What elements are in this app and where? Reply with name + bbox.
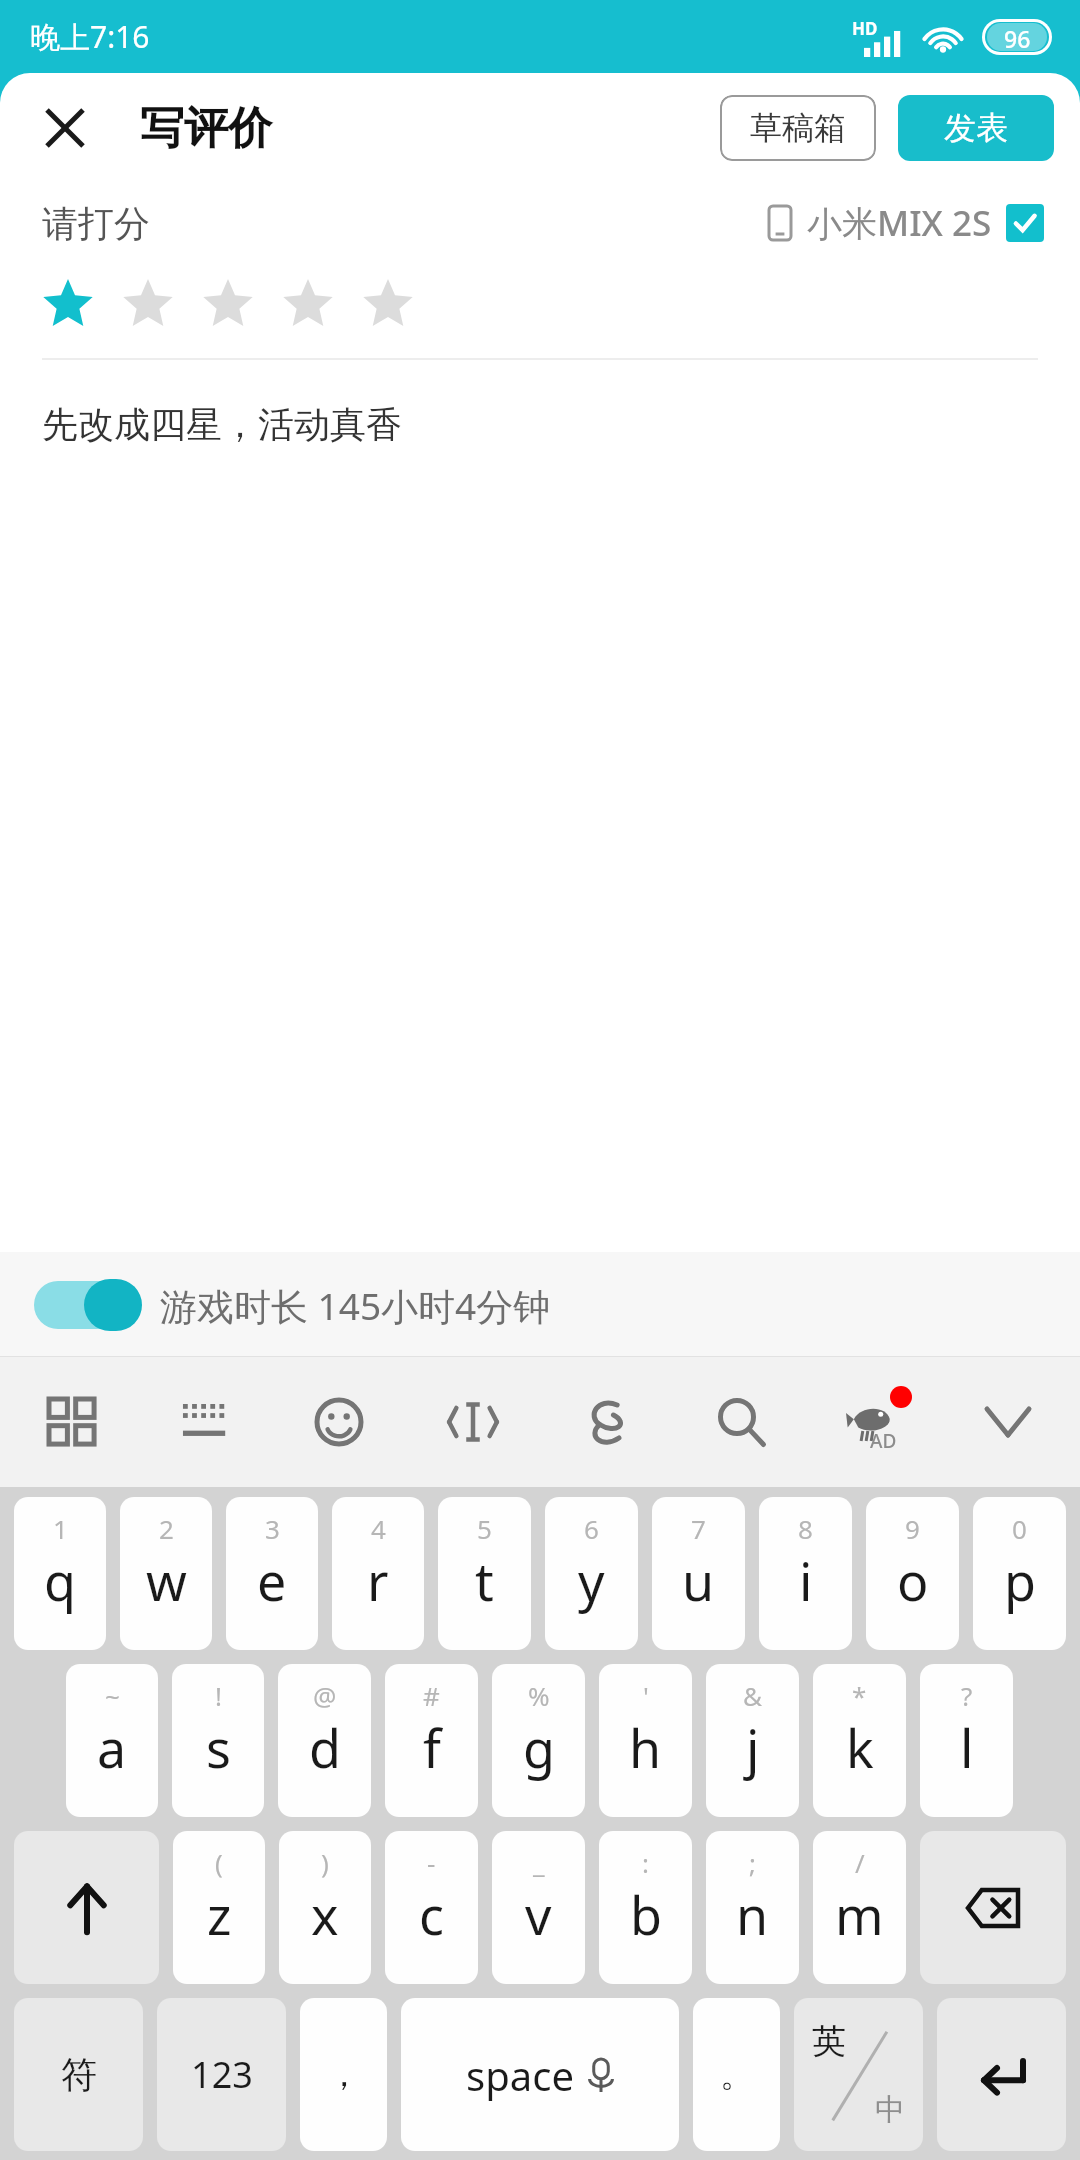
staticText: 草稿箱: [750, 108, 846, 148]
button[interactable]: Switch language: [794, 1998, 923, 2151]
staticText: r: [367, 1545, 389, 1616]
staticText: ?: [961, 1678, 973, 1713]
staticText: 7: [691, 1511, 706, 1546]
button[interactable]: (: [173, 1831, 265, 1984]
staticText: (: [215, 1845, 223, 1880]
button[interactable]: 9: [866, 1497, 959, 1650]
button[interactable]: 4: [332, 1497, 424, 1650]
button[interactable]: 6: [545, 1497, 638, 1650]
button[interactable]: ): [279, 1831, 371, 1984]
button[interactable]: [282, 275, 362, 335]
button[interactable]: Apps: [24, 1367, 120, 1477]
staticText: 晚上7:16: [30, 16, 150, 57]
staticText: i: [799, 1545, 813, 1616]
staticText: t: [475, 1545, 494, 1616]
button[interactable]: Keyboard: [158, 1367, 254, 1477]
staticText: d: [309, 1712, 341, 1783]
button[interactable]: [362, 275, 442, 335]
button[interactable]: @: [278, 1664, 371, 1817]
button[interactable]: 0: [973, 1497, 1066, 1650]
staticText: -: [427, 1845, 436, 1880]
button[interactable]: space: [401, 1998, 679, 2151]
staticText: q: [44, 1545, 76, 1616]
button[interactable]: /: [813, 1831, 906, 1984]
button[interactable]: Backspace: [920, 1831, 1066, 1984]
button[interactable]: 123: [157, 1998, 286, 2151]
button[interactable]: #: [385, 1664, 478, 1817]
staticText: x: [311, 1879, 339, 1950]
button[interactable]: 8: [759, 1497, 852, 1650]
staticText: 请打分: [42, 201, 150, 246]
button[interactable]: Enter: [937, 1998, 1066, 2151]
staticText: 。: [720, 2053, 754, 2096]
button[interactable]: 3: [226, 1497, 318, 1650]
button[interactable]: Hide keyboard: [960, 1367, 1056, 1477]
button[interactable]: Emoji: [291, 1367, 387, 1477]
staticText: o: [897, 1545, 929, 1616]
button[interactable]: :: [599, 1831, 692, 1984]
staticText: 5: [477, 1511, 492, 1546]
staticText: c: [419, 1879, 444, 1950]
staticText: b: [630, 1879, 662, 1950]
button[interactable]: %: [492, 1664, 585, 1817]
staticText: 8: [798, 1511, 813, 1546]
staticText: %: [528, 1678, 550, 1713]
staticText: 123: [191, 2050, 253, 2099]
button[interactable]: ': [599, 1664, 692, 1817]
staticText: j: [746, 1712, 760, 1783]
button[interactable]: 游戏时长 145小时4分钟: [34, 1279, 551, 1331]
staticText: 4: [371, 1511, 386, 1546]
staticText: 9: [905, 1511, 920, 1546]
staticText: ，: [327, 2053, 361, 2096]
staticText: AD: [870, 1428, 897, 1454]
button[interactable]: Attach: [559, 1367, 655, 1477]
button[interactable]: Close: [30, 93, 100, 163]
button[interactable]: 1: [14, 1497, 106, 1650]
staticText: 2: [159, 1511, 174, 1546]
button[interactable]: _: [492, 1831, 585, 1984]
staticText: 英: [812, 2020, 846, 2063]
button[interactable]: Ad: [826, 1367, 922, 1477]
button[interactable]: !: [172, 1664, 264, 1817]
staticText: e: [257, 1545, 287, 1616]
button[interactable]: -: [385, 1831, 478, 1984]
staticText: y: [578, 1545, 605, 1616]
button[interactable]: 符: [14, 1998, 143, 2151]
staticText: n: [736, 1879, 769, 1950]
staticText: :: [642, 1845, 649, 1880]
button[interactable]: ;: [706, 1831, 799, 1984]
staticText: *: [852, 1678, 867, 1713]
staticText: #: [423, 1678, 440, 1713]
button[interactable]: [122, 275, 202, 335]
button[interactable]: ~: [66, 1664, 158, 1817]
button[interactable]: Search: [693, 1367, 789, 1477]
button[interactable]: Cursor: [425, 1367, 521, 1477]
staticText: p: [1004, 1545, 1036, 1616]
staticText: l: [960, 1712, 974, 1783]
staticText: ': [643, 1678, 649, 1713]
button[interactable]: Shift: [14, 1831, 159, 1984]
staticText: 3: [265, 1511, 280, 1546]
button[interactable]: 。: [693, 1998, 780, 2151]
button[interactable]: [42, 275, 122, 335]
button[interactable]: 5: [438, 1497, 531, 1650]
button[interactable]: 2: [120, 1497, 212, 1650]
staticText: /: [855, 1845, 865, 1880]
button[interactable]: &: [706, 1664, 799, 1817]
staticText: @: [313, 1678, 337, 1713]
button[interactable]: 小米MIX 2S: [769, 199, 1044, 247]
button[interactable]: 草稿箱: [720, 95, 876, 161]
button[interactable]: [202, 275, 282, 335]
button[interactable]: ，: [300, 1998, 387, 2151]
button[interactable]: *: [813, 1664, 906, 1817]
staticText: ): [321, 1845, 329, 1880]
button[interactable]: 7: [652, 1497, 745, 1650]
staticText: &: [743, 1678, 763, 1713]
staticText: 符: [61, 2052, 97, 2097]
staticText: z: [207, 1879, 232, 1950]
staticText: f: [423, 1712, 441, 1783]
button[interactable]: ?: [920, 1664, 1013, 1817]
staticText: 小米MIX 2S: [807, 199, 992, 247]
staticText: HD: [852, 17, 878, 40]
button[interactable]: 发表: [898, 95, 1054, 161]
